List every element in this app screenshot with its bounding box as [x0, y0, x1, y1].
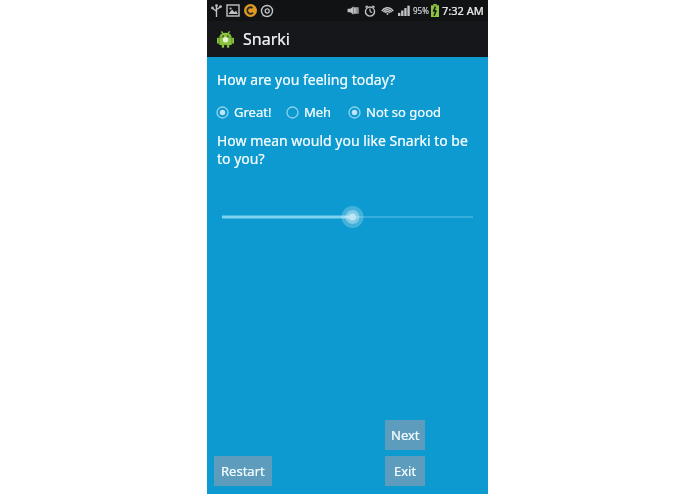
staticText: Next [391, 426, 420, 444]
button[interactable]: Not so good [348, 103, 442, 121]
staticText: Restart [221, 462, 265, 480]
button[interactable]: Meh [286, 103, 332, 121]
staticText: Not so good [366, 103, 442, 121]
staticText: Great! [234, 103, 272, 121]
button[interactable]: Restart [214, 456, 272, 486]
staticText: 95% [413, 5, 429, 16]
staticText: How mean would you like Snarki to be to … [217, 131, 472, 168]
staticText: Meh [304, 103, 332, 121]
button[interactable]: Great! [216, 103, 272, 121]
button[interactable]: Snark level slider [207, 200, 488, 234]
staticText: 7:32 AM [442, 3, 484, 18]
staticText: Exit [394, 462, 417, 480]
button[interactable]: Exit [385, 456, 425, 486]
staticText: Snarki [243, 28, 290, 50]
button[interactable]: Next [385, 420, 425, 450]
staticText: How are you feeling today? [217, 70, 396, 89]
